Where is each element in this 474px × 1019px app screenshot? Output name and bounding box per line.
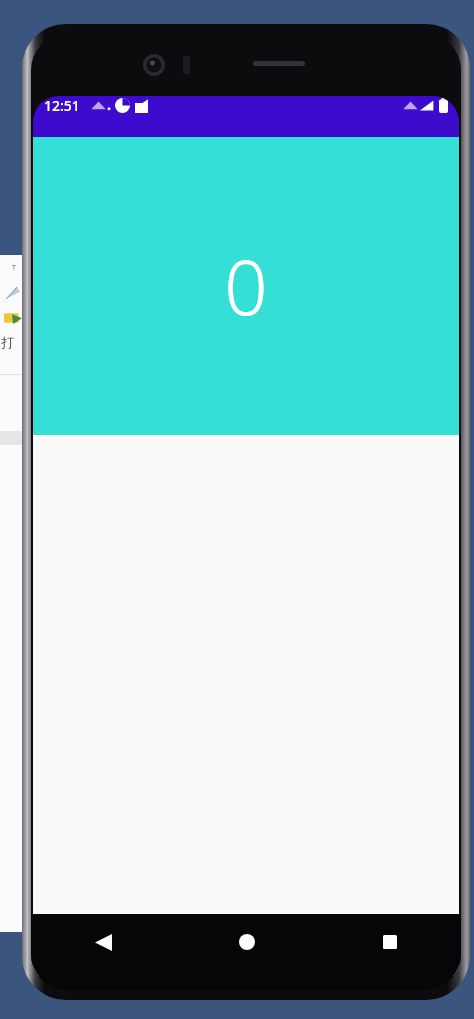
staticText: 0 xyxy=(224,234,268,338)
staticText: 打 xyxy=(1,334,14,350)
button[interactable]: Recents xyxy=(318,914,461,970)
staticText: 12:51 xyxy=(44,96,80,115)
button[interactable]: 0 xyxy=(33,137,459,435)
staticText: T xyxy=(12,263,16,273)
button[interactable]: Home xyxy=(175,914,318,970)
button[interactable]: Back xyxy=(31,914,175,970)
